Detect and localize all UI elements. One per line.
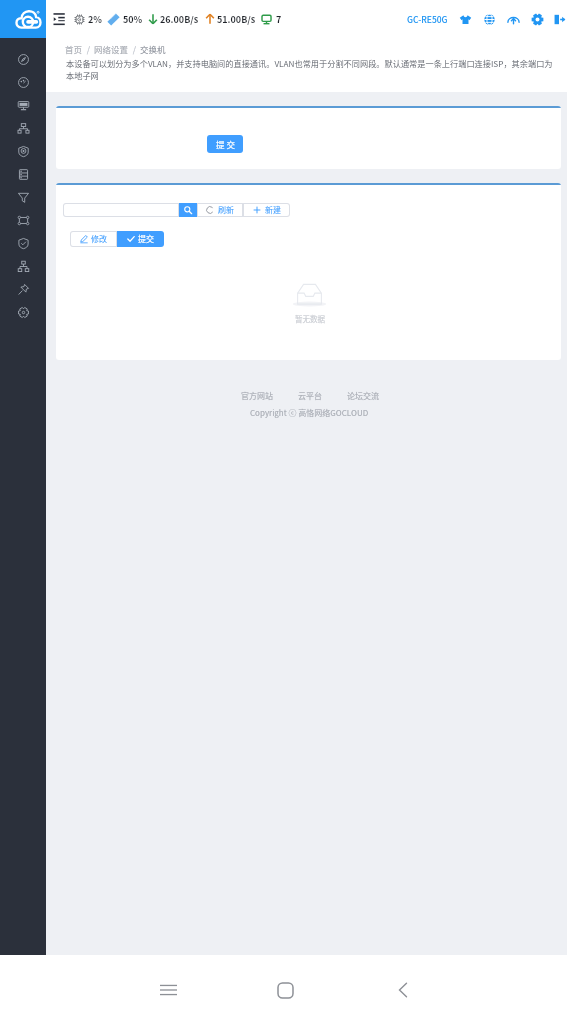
button[interactable]: 提交 [117,231,164,247]
button[interactable]: 官方网站 [241,390,273,402]
button[interactable]: Shield [0,232,46,255]
staticText: 7 [276,13,282,26]
button[interactable]: 刷新 [197,203,243,217]
button[interactable]: Language [483,13,496,26]
staticText: Copyright ⓒ 高恪网络GOCLOUD [250,407,369,419]
staticText: / [83,43,94,55]
staticText: 提 交 [216,138,235,150]
staticText: GC-RE50G [407,13,448,25]
staticText: 26.00B/s [160,13,199,26]
button[interactable]: Home [257,962,313,1018]
button[interactable]: Menu [53,12,65,26]
button[interactable]: Speed [0,71,46,94]
button[interactable]: Network [0,255,46,278]
button[interactable]: Logo [0,0,46,38]
staticText: 暂无数据 [295,313,325,324]
button[interactable]: 提 交 [207,135,243,153]
button[interactable]: Dashboard [0,48,46,71]
button[interactable]: Back [375,962,431,1018]
button[interactable] [63,203,179,217]
button[interactable]: Logout [553,13,566,26]
staticText: / [129,43,140,55]
staticText: 2% [88,13,102,26]
staticText: 51.00B/s [217,13,256,26]
staticText: 交换机 [140,43,166,55]
button[interactable]: Theme [459,13,472,26]
staticText: 50% [123,13,143,26]
staticText: 本设备可以划分为多个VLAN，并支持电脑间的直接通讯。VLAN也常用于分割不同网… [66,57,558,81]
button[interactable]: Pin [0,278,46,301]
button[interactable]: Monitor [0,94,46,117]
button[interactable]: Settings [531,13,544,26]
staticText: 新建 [265,204,281,216]
button[interactable]: Filter [0,186,46,209]
button[interactable]: Storage [0,163,46,186]
button[interactable]: Recents [140,962,196,1018]
staticText: 提交 [138,233,154,245]
button[interactable]: 新建 [243,203,290,217]
button[interactable]: 首页 [65,43,83,55]
button[interactable]: 论坛交流 [347,390,379,402]
button[interactable]: Search [179,203,197,217]
button[interactable]: Settings [0,301,46,324]
button[interactable]: 网络设置 [94,43,129,55]
button[interactable]: 修改 [70,231,117,247]
button[interactable]: 云平台 [298,390,322,402]
staticText: 修改 [91,233,107,245]
button[interactable]: Ports [0,209,46,232]
button[interactable]: Upload [507,13,520,26]
button[interactable]: Devices [0,117,46,140]
staticText: 刷新 [218,204,234,216]
button[interactable]: Security [0,140,46,163]
